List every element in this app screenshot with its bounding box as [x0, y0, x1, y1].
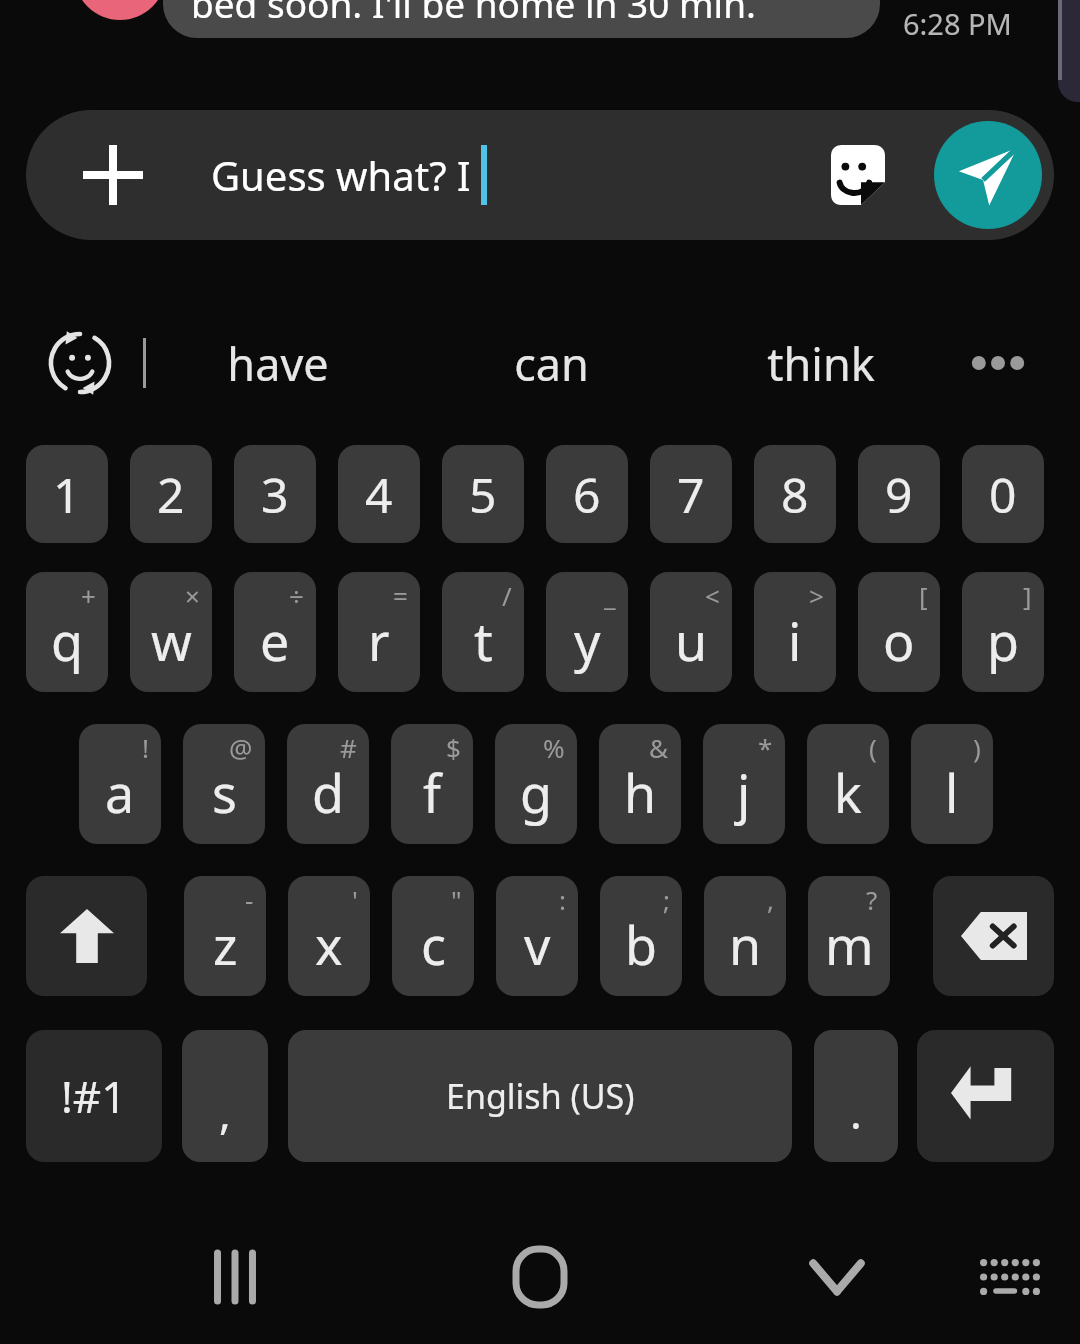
button[interactable]: +: [26, 572, 108, 692]
staticText: j: [737, 757, 751, 828]
button[interactable]: ,: [182, 1030, 268, 1162]
button[interactable]: 5: [442, 445, 524, 543]
staticText: <: [705, 578, 720, 613]
staticText: h: [624, 757, 657, 828]
button[interactable]: [: [858, 572, 940, 692]
button[interactable]: ?: [808, 876, 890, 996]
button[interactable]: Change keyboard: [955, 1210, 1065, 1344]
button[interactable]: More suggestions: [958, 323, 1038, 403]
button[interactable]: >: [754, 572, 836, 692]
button[interactable]: .: [814, 1030, 898, 1162]
staticText: a: [105, 757, 135, 828]
staticText: =: [393, 578, 408, 613]
button[interactable]: %: [495, 724, 577, 844]
button[interactable]: =: [338, 572, 420, 692]
staticText: m: [825, 909, 874, 980]
staticText: [: [919, 578, 928, 613]
button[interactable]: _: [546, 572, 628, 692]
button[interactable]: ": [392, 876, 474, 996]
staticText: ×: [185, 578, 200, 613]
staticText: &: [649, 730, 669, 765]
staticText: ,: [219, 1082, 231, 1142]
button[interactable]: ): [911, 724, 993, 844]
button[interactable]: think: [711, 308, 931, 418]
button[interactable]: 6: [546, 445, 628, 543]
staticText: s: [212, 757, 237, 828]
button[interactable]: (: [807, 724, 889, 844]
staticText: 6:28 PM: [903, 4, 1012, 43]
button[interactable]: English (US): [288, 1030, 792, 1162]
staticText: 3: [261, 462, 289, 527]
button[interactable]: Send: [934, 121, 1042, 229]
button[interactable]: <: [650, 572, 732, 692]
staticText: 6: [573, 462, 601, 527]
button[interactable]: Backspace: [933, 876, 1054, 996]
button[interactable]: Hide keyboard: [782, 1210, 892, 1344]
staticText: 8: [781, 462, 809, 527]
button[interactable]: ]: [962, 572, 1044, 692]
button[interactable]: 0: [962, 445, 1044, 543]
button[interactable]: can: [441, 308, 661, 418]
staticText: o: [883, 605, 915, 676]
staticText: r: [368, 605, 390, 676]
staticText: -: [245, 882, 254, 917]
button[interactable]: bed soon. I'll be home in 30 min.: [163, 0, 880, 38]
staticText: d: [312, 757, 344, 828]
button[interactable]: ': [288, 876, 370, 996]
button[interactable]: Emoji suggestions: [38, 321, 122, 405]
staticText: !#1: [61, 1066, 127, 1126]
button[interactable]: /: [442, 572, 524, 692]
staticText: u: [675, 605, 708, 676]
button[interactable]: $: [391, 724, 473, 844]
staticText: i: [788, 605, 802, 676]
staticText: bed soon. I'll be home in 30 min.: [191, 0, 756, 28]
button[interactable]: ;: [600, 876, 682, 996]
staticText: !: [142, 730, 149, 765]
staticText: 0: [989, 462, 1017, 527]
button[interactable]: 7: [650, 445, 732, 543]
button[interactable]: 8: [754, 445, 836, 543]
button[interactable]: #: [287, 724, 369, 844]
staticText: 4: [365, 462, 393, 527]
button[interactable]: 2: [130, 445, 212, 543]
button[interactable]: :: [496, 876, 578, 996]
button[interactable]: 1: [26, 445, 108, 543]
staticText: /: [502, 578, 512, 613]
staticText: >: [809, 578, 824, 613]
staticText: #: [340, 730, 357, 765]
staticText: can: [514, 333, 589, 394]
button[interactable]: &: [599, 724, 681, 844]
staticText: @: [229, 730, 253, 765]
button[interactable]: @: [183, 724, 265, 844]
staticText: x: [315, 909, 343, 980]
button[interactable]: Stickers: [820, 140, 890, 210]
button[interactable]: *: [703, 724, 785, 844]
staticText: *: [758, 730, 773, 765]
staticText: b: [625, 909, 657, 980]
button[interactable]: Home: [485, 1210, 595, 1344]
button[interactable]: have: [168, 308, 388, 418]
button[interactable]: 3: [234, 445, 316, 543]
button[interactable]: Enter: [917, 1030, 1054, 1162]
button[interactable]: Recents: [180, 1210, 290, 1344]
button[interactable]: !: [79, 724, 161, 844]
staticText: ÷: [289, 578, 304, 613]
button[interactable]: Attach: [70, 132, 156, 218]
button[interactable]: ×: [130, 572, 212, 692]
button[interactable]: ,: [704, 876, 786, 996]
button[interactable]: 9: [858, 445, 940, 543]
button[interactable]: 4: [338, 445, 420, 543]
staticText: _: [604, 578, 616, 613]
staticText: 7: [677, 462, 705, 527]
staticText: p: [987, 605, 1019, 676]
staticText: k: [834, 757, 862, 828]
staticText: ": [451, 882, 462, 917]
button[interactable]: Shift: [26, 876, 147, 996]
button[interactable]: -: [184, 876, 266, 996]
button[interactable]: ÷: [234, 572, 316, 692]
staticText: w: [151, 605, 192, 676]
staticText: z: [213, 909, 238, 980]
staticText: ,: [767, 882, 774, 917]
button[interactable]: !#1: [26, 1030, 162, 1162]
staticText: f: [423, 757, 441, 828]
